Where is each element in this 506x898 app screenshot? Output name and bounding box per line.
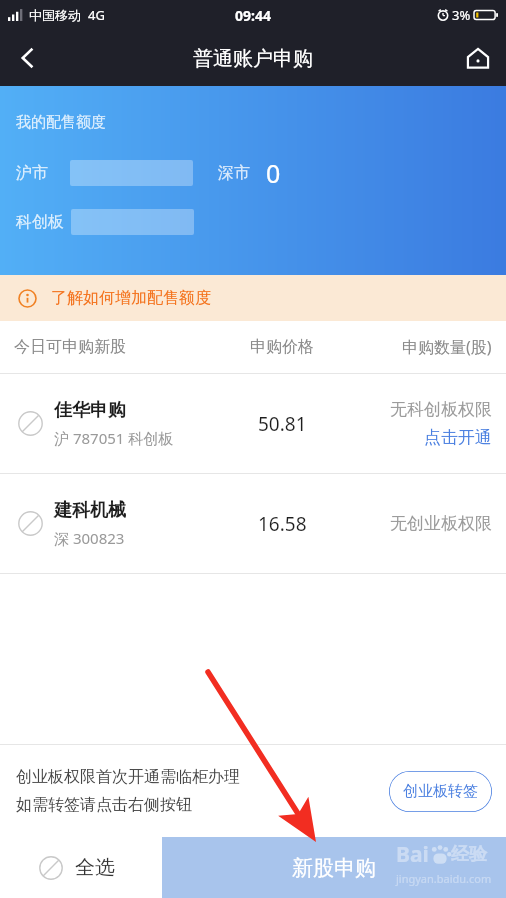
button[interactable]: 全选 <box>0 837 162 898</box>
staticText: 3% <box>452 6 471 24</box>
staticText: 中国移动 <box>29 7 81 23</box>
staticText: Bai <box>396 840 429 869</box>
staticText: 全选 <box>75 855 115 880</box>
button[interactable]: Back <box>0 30 56 86</box>
staticText: 4G <box>88 6 105 24</box>
staticText: 沪市 <box>16 163 48 183</box>
staticText: 建科机械 <box>54 499 126 522</box>
button[interactable]: 了解如何增加配售额度 <box>0 275 506 321</box>
staticText: 我的配售额度 <box>16 113 106 132</box>
staticText: 创业板转签 <box>403 782 478 801</box>
staticText: 今日可申购新股 <box>14 337 126 357</box>
button[interactable]: 建科机械 <box>0 474 506 573</box>
staticText: 09:44 <box>235 6 271 25</box>
staticText: 深市 <box>218 163 250 183</box>
staticText: 佳华申购 <box>54 399 126 422</box>
staticText: 50.81 <box>258 411 307 437</box>
staticText: 科创板 <box>16 212 64 232</box>
staticText: 了解如何增加配售额度 <box>51 288 211 308</box>
staticText: 如需转签请点击右侧按钮 <box>16 795 192 815</box>
staticText: 无科创板权限 <box>390 399 492 420</box>
button[interactable]: 创业板转签 <box>389 771 492 812</box>
button[interactable]: Home <box>450 30 506 86</box>
staticText: 普通账户申购 <box>193 46 313 71</box>
staticText: 创业板权限首次开通需临柜办理 <box>16 767 240 787</box>
staticText: 申购数量(股) <box>402 336 492 358</box>
button[interactable]: 点击开通 <box>424 427 492 448</box>
staticText: 16.58 <box>258 511 307 537</box>
staticText: 经验 <box>451 843 487 866</box>
button[interactable]: 佳华申购 <box>0 374 506 473</box>
staticText: 无创业板权限 <box>390 513 492 534</box>
staticText: 点击开通 <box>424 427 492 448</box>
staticText: 沪 787051 科创板 <box>54 428 174 448</box>
staticText: jingyan.baidu.com <box>396 871 492 886</box>
staticText: 新股申购 <box>292 855 376 881</box>
staticText: 深 300823 <box>54 528 125 548</box>
button[interactable]: 新股申购 <box>162 837 506 898</box>
staticText: 申购价格 <box>250 337 314 357</box>
staticText: 0 <box>266 156 281 190</box>
